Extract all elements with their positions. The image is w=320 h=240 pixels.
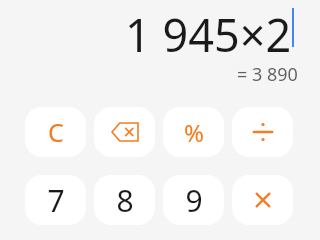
staticText: 7 [47, 180, 65, 221]
button[interactable]: % [163, 107, 224, 157]
button[interactable]: Divide [232, 107, 293, 157]
staticText: 9 [185, 180, 203, 221]
button[interactable]: Backspace [94, 107, 155, 157]
staticText: 8 [116, 180, 134, 221]
button[interactable]: 7 [25, 175, 86, 225]
staticText: 1 945×2 [125, 4, 292, 65]
button[interactable]: C [25, 107, 86, 157]
button[interactable]: 8 [94, 175, 155, 225]
staticText: C [48, 115, 64, 149]
button[interactable]: Multiply [232, 175, 293, 225]
staticText: = 3 890 [237, 62, 298, 87]
button[interactable]: 9 [163, 175, 224, 225]
staticText: % [184, 116, 204, 149]
